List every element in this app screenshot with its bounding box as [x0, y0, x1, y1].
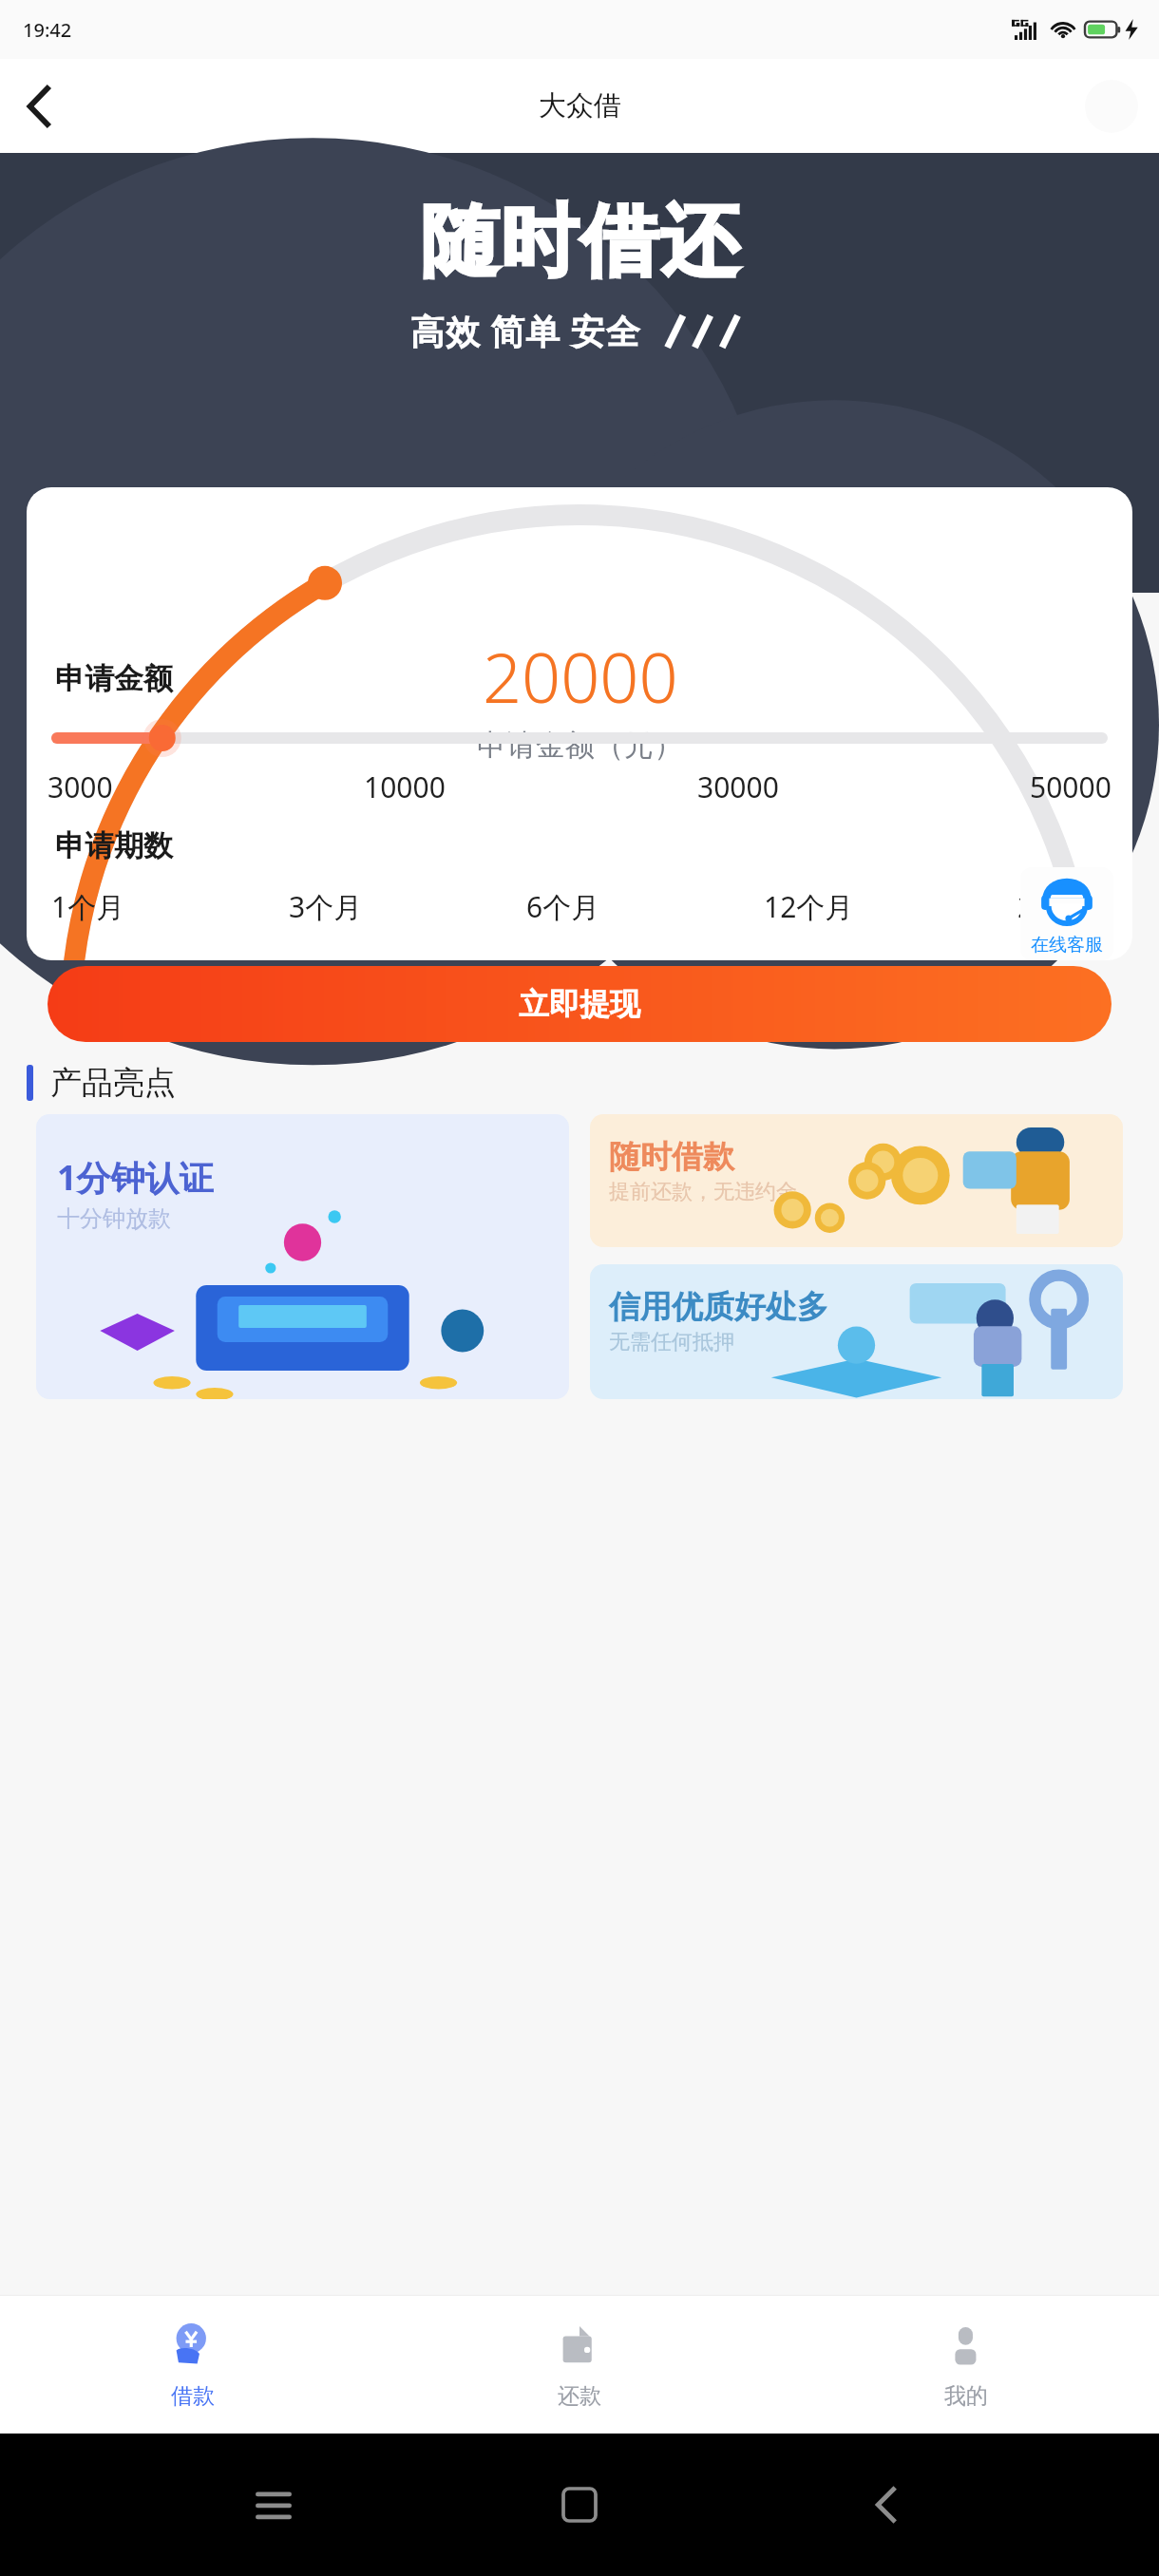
staticText: 十分钟放款: [57, 1204, 171, 1233]
staticText: 还款: [558, 2382, 601, 2410]
button[interactable]: Back: [853, 2472, 920, 2538]
button[interactable]: 1分钟认证: [36, 1114, 569, 1399]
staticText: 3个月: [289, 887, 363, 926]
staticText: 3000: [47, 767, 113, 806]
staticText: 立即提现: [519, 985, 640, 1023]
staticText: 申请金额（元）: [477, 727, 683, 764]
staticText: 无需任何抵押: [609, 1329, 734, 1355]
staticText: 10000: [364, 767, 446, 806]
staticText: 提前还款，无违约金: [609, 1179, 797, 1205]
staticText: 大众借: [539, 88, 621, 123]
button[interactable]: Recent apps: [240, 2472, 307, 2538]
button[interactable]: Home: [546, 2472, 613, 2538]
staticText: 50000: [1030, 767, 1111, 806]
button[interactable]: 1个月: [51, 887, 125, 926]
staticText: 在线客服: [1031, 934, 1103, 957]
button[interactable]: 我的: [772, 2296, 1159, 2434]
staticText: 随时借还: [420, 193, 739, 291]
button[interactable]: 立即提现: [47, 966, 1111, 1042]
staticText: 1分钟认证: [57, 1154, 214, 1201]
staticText: 信用优质好处多: [609, 1287, 828, 1327]
staticText: 30000: [697, 767, 779, 806]
button[interactable]: 12个月: [764, 887, 854, 926]
staticText: 借款: [171, 2382, 215, 2410]
button[interactable]: 24个月: [1017, 887, 1108, 926]
staticText: 随时借款: [609, 1137, 734, 1177]
staticText: 6个月: [526, 887, 600, 926]
staticText: 20000: [483, 630, 678, 723]
button[interactable]: Amount slider: [51, 718, 1108, 758]
button[interactable]: Back: [9, 76, 70, 137]
staticText: 我的: [944, 2382, 988, 2410]
button[interactable]: 信用优质好处多: [590, 1264, 1123, 1399]
button[interactable]: 3个月: [289, 887, 363, 926]
staticText: 1个月: [51, 887, 125, 926]
staticText: 高效 简单 安全: [410, 308, 641, 354]
button[interactable]: 借款: [0, 2296, 386, 2434]
staticText: 24个月: [1017, 887, 1108, 926]
button[interactable]: 6个月: [526, 887, 600, 926]
button[interactable]: 随时借款: [590, 1114, 1123, 1247]
staticText: 申请金额: [55, 660, 173, 697]
button[interactable]: 在线客服: [1020, 867, 1113, 960]
staticText: 12个月: [764, 887, 854, 926]
staticText: 19:42: [23, 17, 72, 43]
staticText: 申请期数: [55, 827, 173, 864]
staticText: 产品亮点: [50, 1063, 176, 1103]
button[interactable]: 还款: [386, 2296, 772, 2434]
